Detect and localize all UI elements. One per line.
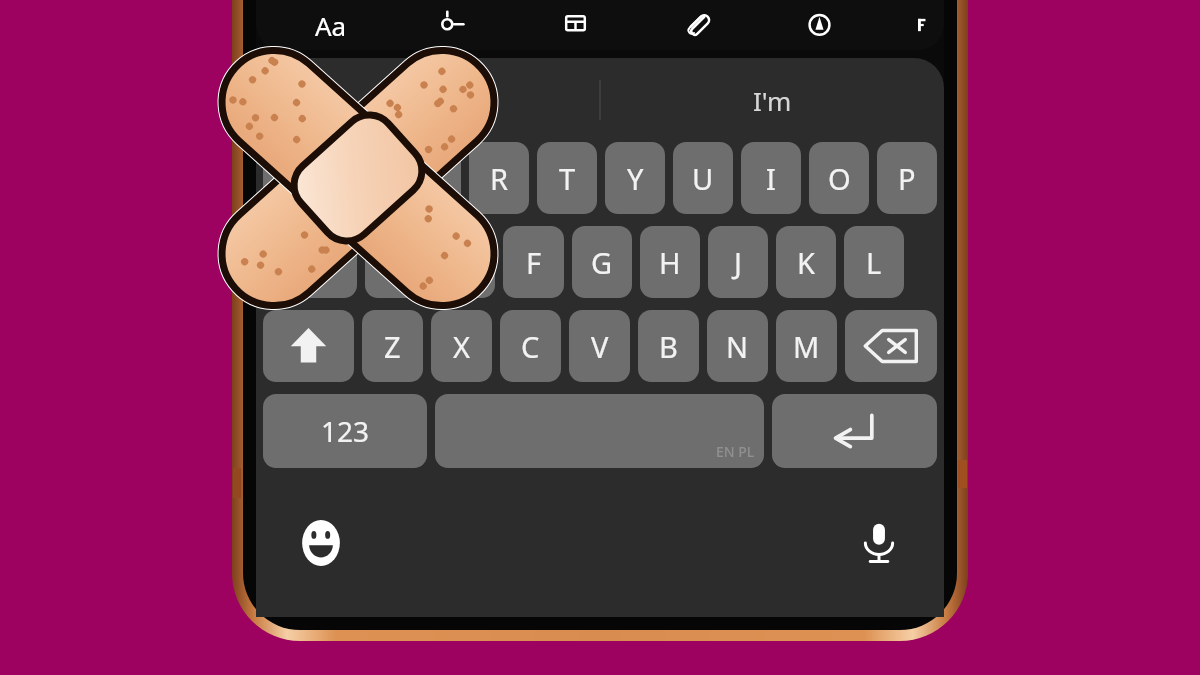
button[interactable]: H	[640, 226, 700, 298]
button[interactable]: Z	[362, 310, 423, 382]
button[interactable]: W	[332, 142, 393, 214]
button[interactable]: P	[877, 142, 937, 214]
button[interactable]: Space	[435, 394, 764, 468]
button[interactable]: Y	[605, 142, 665, 214]
button[interactable]: E	[401, 142, 461, 214]
button[interactable]: Sticker	[430, 2, 476, 48]
staticText: Q	[282, 159, 305, 198]
staticText: G	[591, 243, 613, 282]
button[interactable]: Backspace	[845, 310, 937, 382]
staticText: K	[797, 243, 815, 282]
button[interactable]: Table	[552, 2, 598, 48]
button[interactable]: Shift	[263, 310, 354, 382]
staticText: M	[793, 327, 820, 366]
staticText: 123	[321, 412, 370, 450]
button[interactable]: Emoji	[292, 514, 350, 572]
button[interactable]: The	[256, 58, 599, 142]
button[interactable]: M	[776, 310, 837, 382]
staticText: X	[453, 327, 470, 366]
staticText: R	[490, 159, 509, 198]
staticText: D	[454, 243, 476, 282]
staticText: T	[559, 159, 576, 198]
button[interactable]: More options	[918, 2, 942, 48]
button[interactable]: V	[569, 310, 630, 382]
staticText: The	[405, 83, 451, 118]
staticText: O	[828, 159, 851, 198]
button[interactable]: K	[776, 226, 836, 298]
button[interactable]: Attach	[674, 2, 720, 48]
staticText: S	[388, 243, 404, 282]
staticText: A	[317, 243, 336, 282]
button[interactable]: F	[503, 226, 564, 298]
button[interactable]: B	[638, 310, 699, 382]
staticText: V	[591, 327, 609, 366]
button[interactable]: R	[469, 142, 529, 214]
staticText: H	[659, 243, 681, 282]
staticText: J	[734, 243, 742, 282]
button[interactable]: S	[365, 226, 426, 298]
button[interactable]: D	[434, 226, 495, 298]
staticText: Aa	[315, 8, 347, 43]
button[interactable]: I	[741, 142, 801, 214]
button[interactable]: C	[500, 310, 561, 382]
staticText: L	[866, 243, 882, 282]
staticText: B	[659, 327, 678, 366]
staticText: C	[521, 327, 540, 366]
staticText: Z	[384, 327, 401, 366]
staticText: I	[766, 159, 776, 198]
staticText: I'm	[753, 83, 792, 118]
button[interactable]: J	[708, 226, 768, 298]
staticText: N	[726, 327, 749, 366]
button[interactable]: Q	[263, 142, 324, 214]
button[interactable]: O	[809, 142, 869, 214]
staticText: F	[526, 243, 542, 282]
staticText: EN PL	[716, 442, 755, 461]
button[interactable]: A	[296, 226, 357, 298]
button[interactable]: Draw	[796, 2, 842, 48]
button[interactable]: X	[431, 310, 492, 382]
button[interactable]: I'm	[601, 58, 944, 142]
button[interactable]: Voice input	[850, 514, 908, 572]
button[interactable]: L	[844, 226, 904, 298]
button[interactable]: U	[673, 142, 733, 214]
button[interactable]: Enter	[772, 394, 937, 468]
staticText: P	[898, 159, 916, 198]
button[interactable]: G	[572, 226, 632, 298]
button[interactable]: N	[707, 310, 768, 382]
staticText: U	[692, 159, 714, 198]
staticText: Y	[627, 159, 644, 198]
button[interactable]: T	[537, 142, 597, 214]
button[interactable]: Text style	[308, 2, 354, 48]
button[interactable]: 123	[263, 394, 427, 468]
staticText: E	[423, 159, 440, 198]
